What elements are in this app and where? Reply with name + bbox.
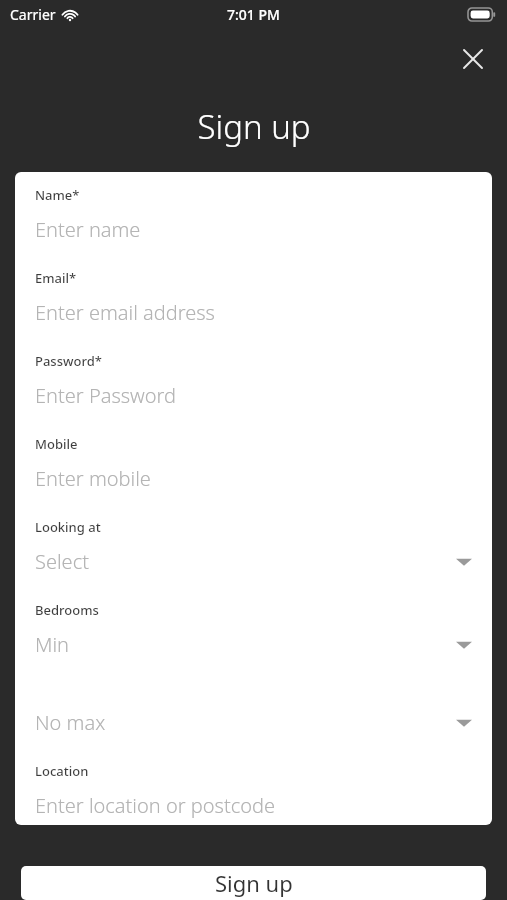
staticText: Sign up <box>197 104 311 149</box>
staticText: Location <box>35 762 89 780</box>
staticText: Password* <box>35 352 102 370</box>
staticText: No max <box>35 709 106 736</box>
staticText: Enter name <box>35 216 141 243</box>
button[interactable]: Sign up <box>21 866 486 900</box>
button[interactable]: Email* <box>15 255 492 338</box>
staticText: Name* <box>35 186 80 204</box>
button[interactable]: Looking at <box>15 504 492 587</box>
staticText: Min <box>35 631 69 658</box>
button[interactable]: Name* <box>15 172 492 255</box>
staticText: Enter email address <box>35 299 215 326</box>
staticText: Enter mobile <box>35 465 151 492</box>
staticText: Looking at <box>35 518 101 536</box>
button[interactable]: No max <box>15 670 492 748</box>
button[interactable]: Close <box>453 39 493 79</box>
staticText: Enter location or postcode <box>35 792 276 819</box>
staticText: Carrier <box>10 5 56 24</box>
staticText: Bedrooms <box>35 601 99 619</box>
staticText: Enter Password <box>35 382 177 409</box>
button[interactable]: Bedrooms <box>15 587 492 670</box>
staticText: Select <box>35 548 89 575</box>
staticText: Sign up <box>215 868 293 898</box>
staticText: Email* <box>35 269 77 287</box>
button[interactable]: Mobile <box>15 421 492 504</box>
button[interactable]: Password* <box>15 338 492 421</box>
staticText: Mobile <box>35 435 78 453</box>
button[interactable]: Location <box>15 748 492 825</box>
staticText: 7:01 PM <box>227 5 280 24</box>
